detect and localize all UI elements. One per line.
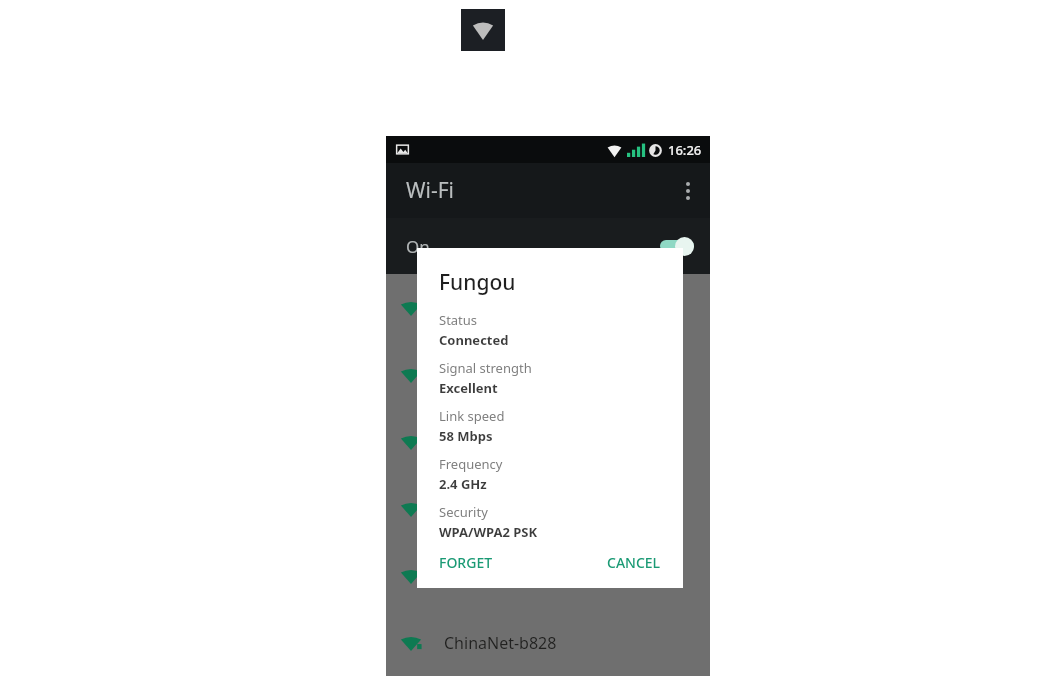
staticText: FORGET bbox=[439, 553, 493, 572]
staticText: WPA/WPA2 PSK bbox=[439, 523, 538, 541]
staticText: Signal strength bbox=[439, 359, 532, 377]
button[interactable] bbox=[386, 542, 710, 609]
staticText: Wi-Fi bbox=[406, 176, 455, 205]
staticText: CANCEL bbox=[607, 553, 661, 572]
staticText: Security bbox=[439, 503, 488, 521]
button[interactable] bbox=[386, 341, 710, 408]
staticText: On bbox=[406, 235, 430, 258]
staticText: 58 Mbps bbox=[439, 427, 493, 445]
button[interactable] bbox=[386, 408, 710, 475]
button[interactable]: Wi-Fi app icon bbox=[461, 9, 505, 51]
staticText: Frequency bbox=[439, 455, 503, 473]
button[interactable]: More options bbox=[666, 169, 710, 213]
button[interactable] bbox=[386, 274, 710, 341]
button[interactable]: CANCEL bbox=[597, 545, 671, 580]
staticText: Connected bbox=[439, 331, 509, 349]
button[interactable] bbox=[386, 475, 710, 542]
staticText: 2.4 GHz bbox=[439, 475, 487, 493]
button[interactable]: On bbox=[386, 218, 710, 274]
staticText: Status bbox=[439, 311, 478, 329]
staticText: 16:26 bbox=[668, 141, 702, 159]
staticText: Excellent bbox=[439, 379, 498, 397]
staticText: Fungou bbox=[439, 268, 516, 297]
button[interactable]: FORGET bbox=[429, 545, 503, 580]
staticText: ChinaNet-b828 bbox=[444, 632, 557, 654]
button[interactable]: ChinaNet-b828 bbox=[386, 609, 710, 676]
staticText: Link speed bbox=[439, 407, 505, 425]
